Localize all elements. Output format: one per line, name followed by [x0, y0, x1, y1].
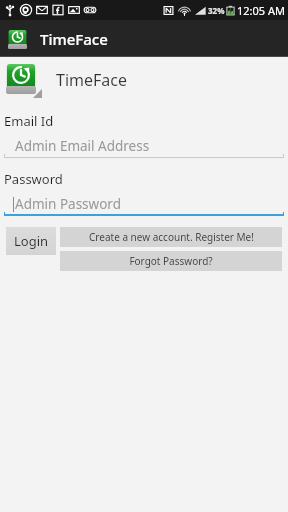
staticText: TimeFace	[40, 29, 108, 49]
staticText: Login	[14, 232, 49, 250]
staticText: Admin Email Address	[15, 137, 150, 155]
staticText: Email Id	[4, 112, 54, 130]
button[interactable]: Admin Email Address	[4, 134, 284, 158]
button[interactable]: Login	[6, 227, 56, 255]
button[interactable]: Create a new account. Register Me!	[60, 227, 282, 247]
staticText: 12:05 AM	[237, 3, 285, 18]
staticText: Admin Password	[15, 195, 121, 213]
button[interactable]: Forgot Password?	[60, 251, 282, 271]
button[interactable]: Admin Password	[4, 192, 284, 216]
staticText: Create a new account. Register Me!	[89, 230, 254, 244]
staticText: 32%	[208, 5, 225, 16]
staticText: TimeFace	[56, 69, 127, 91]
staticText: Forgot Password?	[129, 254, 213, 268]
staticText: Password	[4, 170, 63, 188]
